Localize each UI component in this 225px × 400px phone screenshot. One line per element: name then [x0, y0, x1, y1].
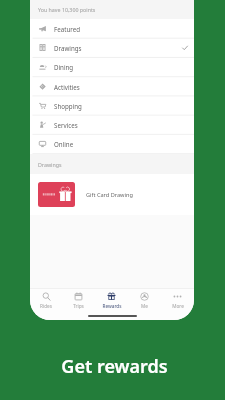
- button[interactable]: Me: [128, 292, 161, 309]
- button[interactable]: Drawings: [30, 38, 194, 57]
- button[interactable]: Online: [30, 134, 194, 153]
- staticText: Drawings: [54, 44, 82, 52]
- staticText: Services: [54, 121, 78, 129]
- staticText: Get rewards: [61, 354, 168, 379]
- staticText: Featured: [54, 25, 80, 33]
- button[interactable]: Shopping: [30, 96, 194, 115]
- button[interactable]: Gift Card Drawing: [30, 174, 194, 215]
- button[interactable]: Services: [30, 115, 194, 134]
- button[interactable]: Rewards: [95, 292, 128, 309]
- staticText: Shopping: [54, 102, 82, 110]
- staticText: Trips: [73, 303, 84, 309]
- staticText: Online: [54, 140, 74, 148]
- button[interactable]: Featured: [30, 19, 194, 38]
- staticText: You have 10,300 points: [38, 6, 96, 13]
- button[interactable]: Rides: [30, 292, 62, 309]
- staticText: More: [172, 303, 184, 309]
- button[interactable]: Dining: [30, 57, 194, 76]
- staticText: Gift Card Drawing: [86, 191, 133, 199]
- staticText: Rewards: [102, 303, 122, 309]
- staticText: Dining: [54, 63, 74, 71]
- button[interactable]: Trips: [62, 292, 95, 309]
- button[interactable]: More: [161, 292, 194, 309]
- staticText: Drawings: [38, 161, 62, 168]
- button[interactable]: Activities: [30, 77, 194, 96]
- staticText: Me: [141, 303, 148, 309]
- staticText: Rides: [40, 303, 52, 309]
- staticText: Activities: [54, 83, 80, 91]
